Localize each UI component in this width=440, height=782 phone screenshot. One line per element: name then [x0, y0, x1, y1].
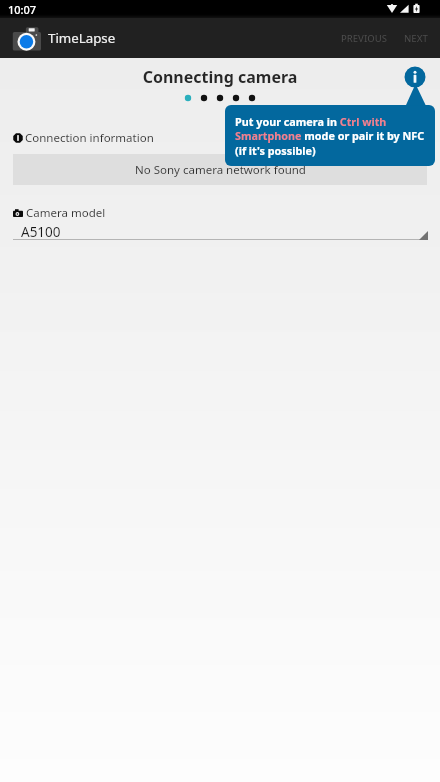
button[interactable]: NEXT	[397, 24, 435, 53]
staticText: No Sony camera network found	[135, 162, 306, 178]
button[interactable]: A5100	[13, 223, 428, 240]
button[interactable]: Information	[404, 66, 426, 88]
staticText: A5100	[21, 223, 61, 240]
staticText: Connection information	[25, 130, 154, 146]
staticText: 10:07	[8, 2, 37, 17]
staticText: NEXT	[404, 32, 428, 45]
staticText: Put your camera in Ctrl with Smartphone …	[235, 114, 431, 159]
staticText: TimeLapse	[48, 29, 116, 47]
staticText: Connecting camera	[0, 66, 440, 88]
staticText: PREVIOUS	[341, 32, 387, 45]
staticText: Camera model	[26, 205, 106, 221]
button[interactable]: PREVIOUS	[334, 24, 394, 53]
